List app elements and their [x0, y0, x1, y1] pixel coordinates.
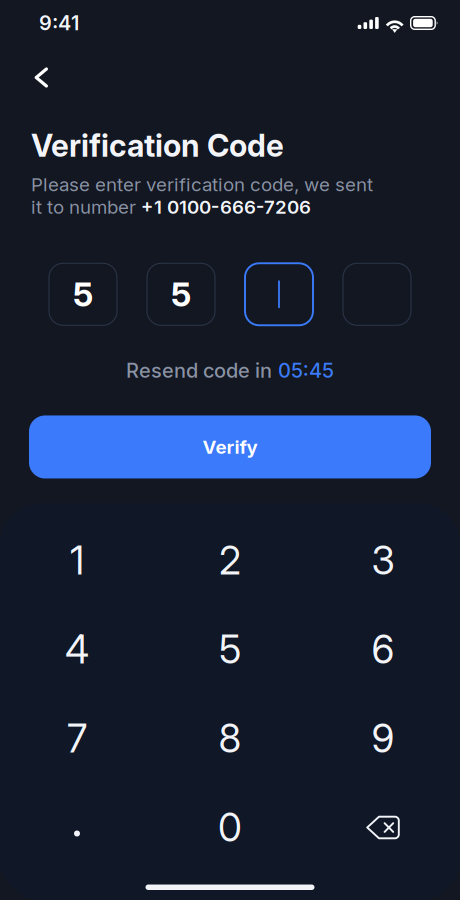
button[interactable]: Code digit 5 [147, 263, 215, 325]
staticText: 0 [218, 804, 242, 851]
button[interactable]: Verify [29, 415, 431, 478]
staticText: 7 [67, 715, 87, 762]
button[interactable]: 1 [0, 516, 153, 605]
button[interactable]: 6 [306, 605, 459, 694]
staticText: Verification Code [31, 127, 284, 164]
staticText: +1 0100-666-7206 [141, 196, 311, 218]
button[interactable]: 8 [153, 694, 306, 783]
staticText: 5 [171, 274, 191, 314]
button[interactable]: 4 [0, 605, 153, 694]
button[interactable]: Decimal point [0, 783, 153, 872]
staticText: Verify [202, 436, 257, 458]
button[interactable]: 5 [153, 605, 306, 694]
button[interactable]: 7 [0, 694, 153, 783]
staticText: 5 [73, 274, 93, 314]
button[interactable]: 9 [306, 694, 459, 783]
button[interactable]: Delete [306, 783, 459, 872]
button[interactable]: Empty code digit [343, 263, 411, 325]
staticText: 3 [371, 537, 394, 584]
staticText: 1 [70, 537, 84, 584]
staticText: 9 [371, 715, 394, 762]
button[interactable]: 0 [153, 783, 306, 872]
staticText: 4 [65, 626, 89, 673]
staticText: 9:41 [39, 11, 79, 35]
staticText: Please enter verification code, we sent [31, 173, 373, 196]
button[interactable]: Empty code digit [245, 263, 313, 325]
staticText: 05:45 [278, 358, 334, 382]
button[interactable]: Code digit 5 [49, 263, 117, 325]
staticText: 5 [219, 626, 241, 673]
button[interactable]: 3 [306, 516, 459, 605]
staticText: Resend code in [126, 358, 272, 382]
staticText: 2 [219, 537, 241, 584]
staticText: 8 [218, 715, 241, 762]
staticText: it to number [31, 196, 141, 218]
button[interactable]: Back [0, 57, 65, 98]
staticText: 6 [371, 626, 394, 673]
button[interactable]: 2 [153, 516, 306, 605]
